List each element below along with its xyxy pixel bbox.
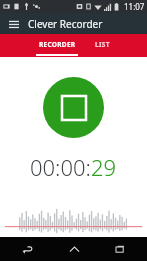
button[interactable]: Open navigation menu	[6, 16, 22, 32]
staticText: LIST	[95, 40, 110, 49]
staticText: Clever Recorder	[28, 17, 103, 31]
button[interactable]: Back	[7, 237, 47, 261]
button[interactable]: RECORDER	[29, 34, 85, 57]
button[interactable]: Stop recording	[43, 77, 104, 138]
button[interactable]: LIST	[85, 34, 119, 57]
staticText: 00:00:29	[30, 152, 117, 182]
button[interactable]: Recent apps	[100, 237, 140, 261]
button[interactable]: Home	[54, 237, 94, 261]
staticText: RECORDER	[39, 40, 76, 49]
staticText: 11:07	[124, 1, 145, 12]
